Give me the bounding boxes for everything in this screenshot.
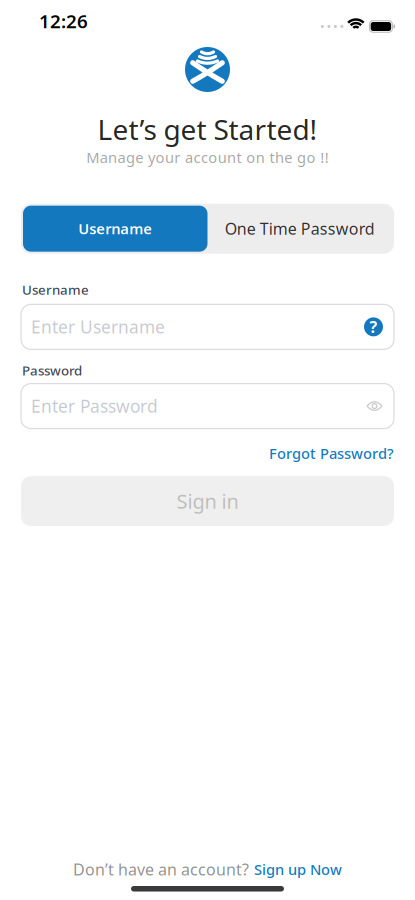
button[interactable]: One Time Password: [207, 206, 392, 252]
staticText: Enter Username: [31, 315, 165, 338]
staticText: Manage your account on the go !!: [86, 148, 329, 167]
staticText: Let’s get Started!: [97, 110, 317, 148]
button[interactable]: Sign in: [21, 476, 394, 526]
button[interactable]: Sign up Now: [254, 860, 342, 879]
staticText: Sign up Now: [254, 860, 342, 879]
staticText: One Time Password: [225, 218, 375, 239]
staticText: Sign in: [176, 488, 238, 514]
staticText: Username: [78, 219, 152, 238]
button[interactable]: Forgot Password?: [269, 444, 394, 463]
staticText: Don’t have an account?: [73, 859, 249, 880]
staticText: ?: [369, 316, 377, 337]
staticText: Enter Password: [31, 395, 158, 418]
staticText: Username: [22, 281, 89, 298]
button[interactable]: Username: [23, 206, 207, 252]
button[interactable]: Username help: [364, 317, 383, 336]
staticText: Password: [22, 361, 82, 379]
staticText: Forgot Password?: [269, 444, 394, 463]
button[interactable]: Show password: [367, 399, 382, 414]
staticText: 12:26: [39, 9, 88, 33]
